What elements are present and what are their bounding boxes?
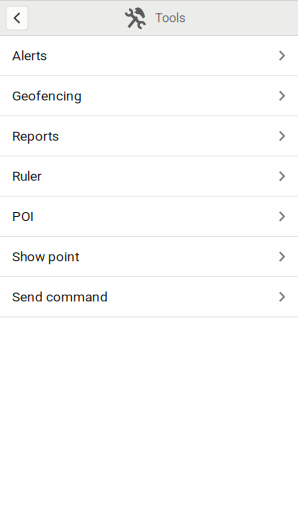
button[interactable]: Ruler xyxy=(0,157,298,196)
staticText: Geofencing xyxy=(12,88,82,104)
button[interactable]: Send command xyxy=(0,277,298,316)
button[interactable]: POI xyxy=(0,197,298,236)
button[interactable]: Show point xyxy=(0,237,298,276)
staticText: Show point xyxy=(12,249,79,264)
staticText: Alerts xyxy=(12,48,47,63)
button[interactable]: Alerts xyxy=(0,36,298,75)
staticText: Send command xyxy=(12,289,108,305)
button[interactable]: Back xyxy=(6,6,28,30)
button[interactable]: Reports xyxy=(0,116,298,156)
staticText: Ruler xyxy=(12,168,42,184)
staticText: POI xyxy=(12,208,34,224)
staticText: Tools xyxy=(155,11,186,25)
button[interactable]: Geofencing xyxy=(0,76,298,115)
staticText: Reports xyxy=(12,128,59,144)
